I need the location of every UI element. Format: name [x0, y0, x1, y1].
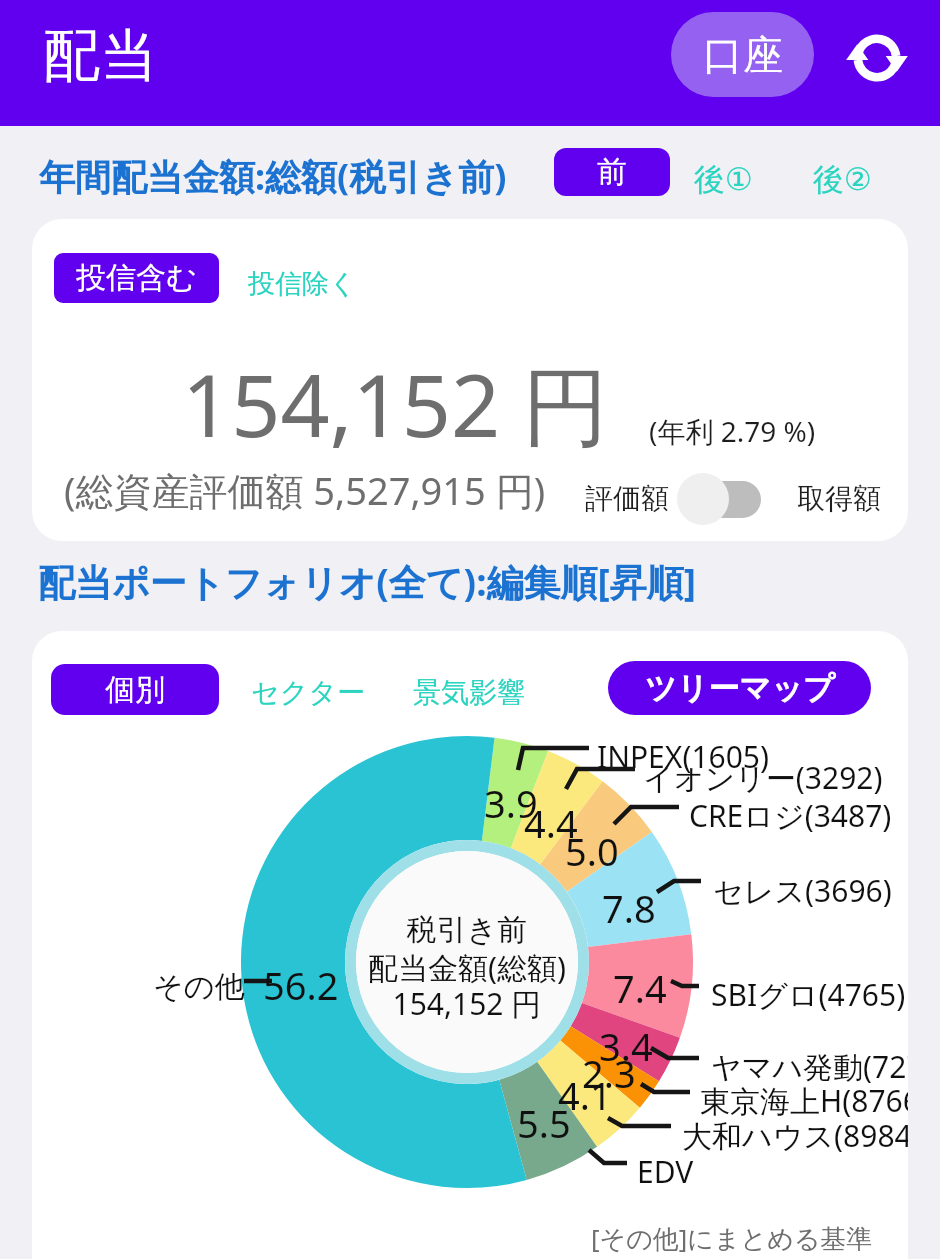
button[interactable]: 口座: [671, 12, 814, 97]
button[interactable]: 投信含む: [54, 253, 219, 303]
staticText: 個別: [105, 671, 165, 709]
staticText: 投信除く: [248, 267, 357, 301]
button[interactable]: 後②: [807, 152, 878, 207]
staticText: 配当: [43, 20, 157, 92]
staticText: ツリーマップ: [645, 669, 835, 708]
button[interactable]: Refresh: [841, 22, 913, 94]
staticText: 配当ポートフォリオ(全て):編集順[昇順]: [38, 556, 697, 607]
staticText: 年間配当金額:総額(税引き前): [39, 152, 507, 201]
staticText: 154,152 円: [182, 345, 609, 462]
staticText: 口座: [703, 30, 783, 80]
button[interactable]: 投信除く: [242, 259, 363, 309]
button[interactable]: セクター: [245, 667, 371, 718]
staticText: セクター: [251, 675, 365, 710]
staticText: (総資産評価額 5,527,915 円): [64, 464, 546, 516]
staticText: 後①: [694, 160, 753, 199]
staticText: [その他]にまとめる基準: [591, 1220, 873, 1256]
button[interactable]: Toggle valuation basis: [677, 469, 769, 529]
staticText: 評価額: [585, 481, 669, 516]
staticText: 後②: [813, 160, 872, 199]
staticText: (年利 2.79 %): [649, 412, 816, 450]
button[interactable]: 景気影響: [407, 667, 531, 718]
button[interactable]: 個別: [51, 664, 219, 715]
staticText: 取得額: [797, 481, 881, 516]
button[interactable]: ツリーマップ: [608, 661, 871, 715]
staticText: 投信含む: [76, 259, 197, 297]
button[interactable]: 前: [554, 148, 670, 196]
staticText: 前: [597, 153, 627, 191]
staticText: 景気影響: [413, 675, 525, 710]
button[interactable]: 後①: [688, 152, 759, 207]
